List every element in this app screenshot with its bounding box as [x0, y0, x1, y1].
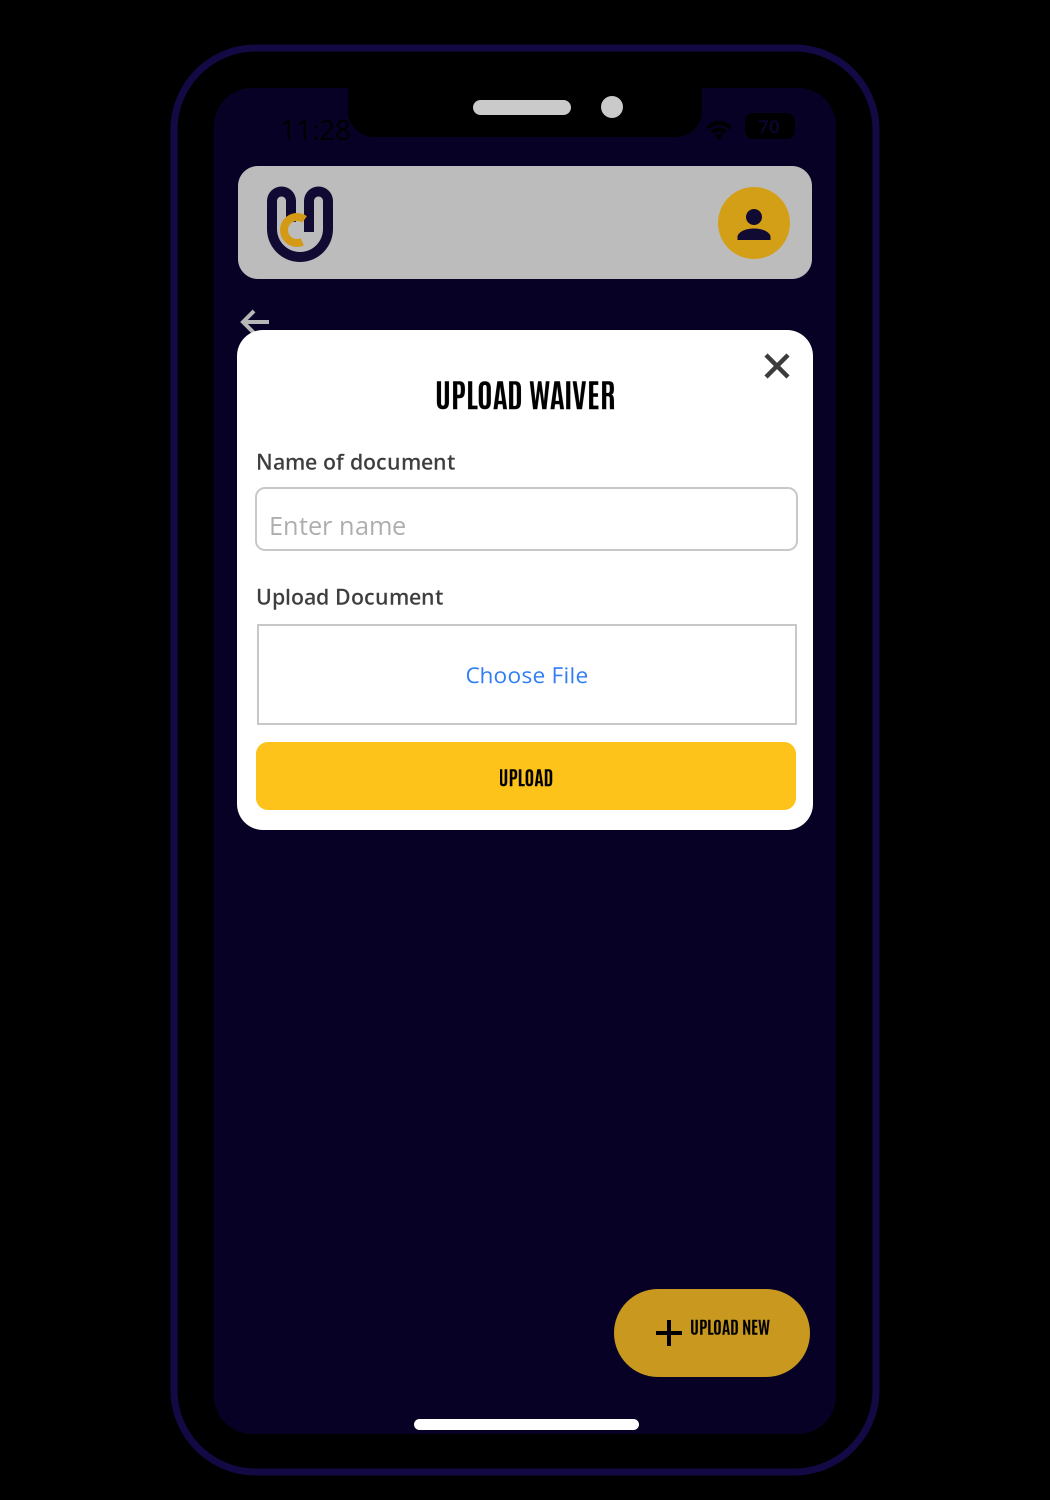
button[interactable]: UPLOAD [256, 742, 796, 810]
staticText: 11:28 [280, 110, 351, 148]
button[interactable]: UPLOAD NEW [614, 1289, 810, 1377]
staticText: Name of document [256, 447, 455, 476]
button[interactable]: Choose File [258, 625, 796, 724]
staticText: 70 [758, 113, 780, 139]
button[interactable]: Back [231, 301, 281, 343]
staticText: Upload Document [256, 582, 443, 611]
staticText: UPLOAD NEW [690, 1314, 770, 1337]
button[interactable]: Account [718, 187, 790, 259]
staticText: UPLOAD [498, 763, 553, 789]
staticText: Choose File [465, 659, 588, 690]
staticText: UPLOAD WAIVER [435, 372, 615, 414]
staticText: Enter name [269, 508, 406, 542]
button[interactable]: Close [753, 342, 801, 390]
